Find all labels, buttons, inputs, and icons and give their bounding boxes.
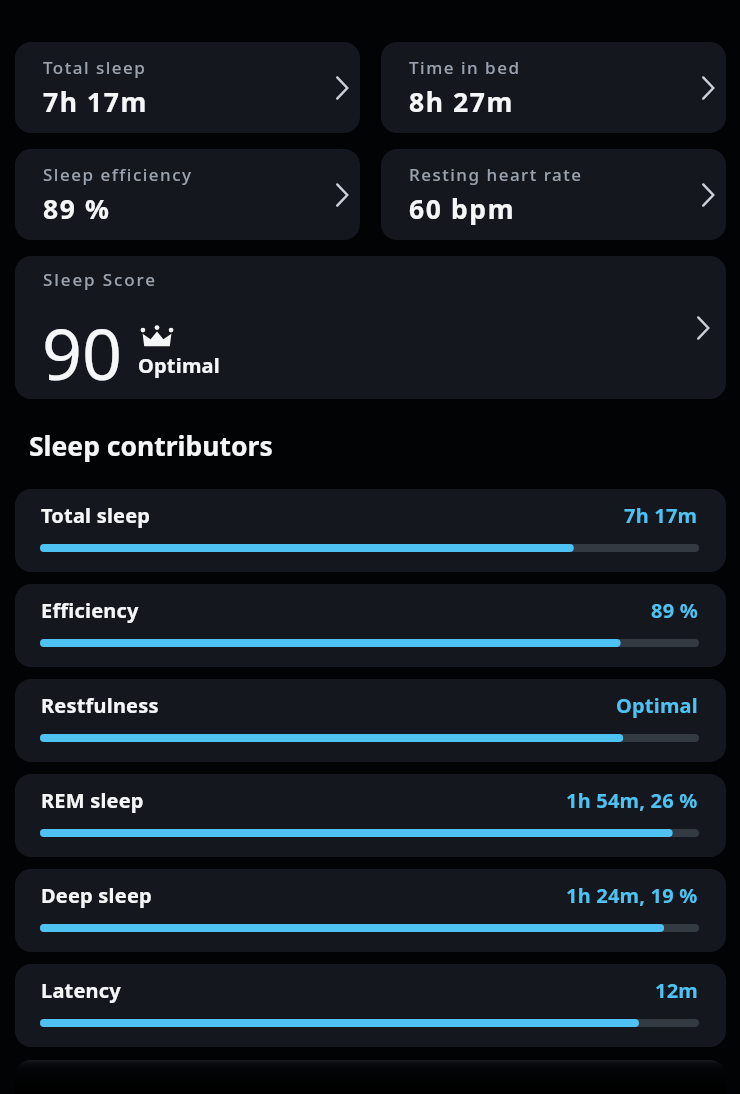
staticText: 90: [42, 305, 123, 399]
staticText: Optimal: [616, 692, 698, 719]
button[interactable]: Sleep efficiency: [15, 149, 360, 240]
staticText: 1h 54m, 26 %: [566, 787, 698, 814]
button[interactable]: Total sleep: [15, 42, 360, 133]
staticText: 7h 17m: [624, 502, 698, 529]
button[interactable]: Efficiency: [15, 584, 726, 667]
staticText: REM sleep: [41, 787, 144, 814]
staticText: Deep sleep: [41, 882, 152, 909]
staticText: Optimal: [138, 352, 220, 379]
staticText: Total sleep: [43, 56, 147, 79]
staticText: Restfulness: [41, 692, 159, 719]
staticText: Latency: [41, 977, 121, 1004]
button[interactable]: Deep sleep: [15, 869, 726, 952]
staticText: Sleep efficiency: [43, 163, 193, 186]
staticText: Total sleep: [41, 502, 151, 529]
staticText: 89 %: [651, 597, 698, 624]
button[interactable]: Restfulness: [15, 679, 726, 762]
staticText: 60 bpm: [409, 191, 516, 227]
staticText: Resting heart rate: [409, 163, 583, 186]
staticText: 89 %: [43, 191, 111, 227]
button[interactable]: Sleep Score: [15, 256, 726, 399]
button[interactable]: REM sleep: [15, 774, 726, 857]
staticText: 1h 24m, 19 %: [566, 882, 698, 909]
staticText: Efficiency: [41, 597, 139, 624]
staticText: Sleep Score: [43, 268, 158, 291]
button[interactable]: Time in bed: [381, 42, 726, 133]
staticText: 12m: [655, 977, 698, 1004]
staticText: 8h 27m: [409, 84, 515, 120]
button[interactable]: Latency: [15, 964, 726, 1047]
button[interactable]: Resting heart rate: [381, 149, 726, 240]
staticText: Sleep contributors: [29, 428, 273, 464]
staticText: 7h 17m: [43, 84, 149, 120]
button[interactable]: Total sleep: [15, 489, 726, 572]
staticText: Time in bed: [409, 56, 521, 79]
